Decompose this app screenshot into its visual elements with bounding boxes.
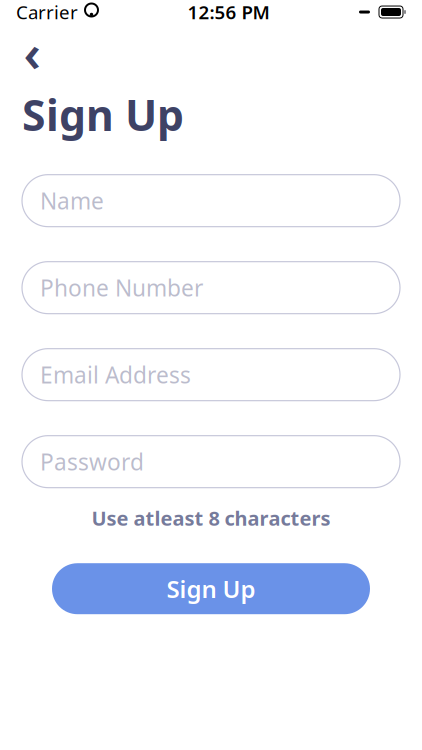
staticText: Email Address <box>40 360 191 390</box>
button[interactable]: Password <box>22 436 400 488</box>
button[interactable]: Phone Number <box>22 262 400 314</box>
button[interactable]: Email Address <box>22 349 400 401</box>
staticText: Password <box>40 447 144 477</box>
staticText: Carrier <box>16 0 78 24</box>
button[interactable]: Name <box>22 175 400 227</box>
staticText: Sign Up <box>22 86 184 143</box>
staticText: Sign Up <box>166 573 255 605</box>
staticText: ‹ <box>23 18 40 86</box>
staticText: Use atleast 8 characters <box>91 505 330 531</box>
staticText: Phone Number <box>40 273 203 303</box>
staticText: 12:56 PM <box>187 0 269 24</box>
button[interactable]: Back <box>12 32 52 72</box>
button[interactable]: Sign Up <box>52 563 370 614</box>
staticText: Name <box>40 186 104 216</box>
